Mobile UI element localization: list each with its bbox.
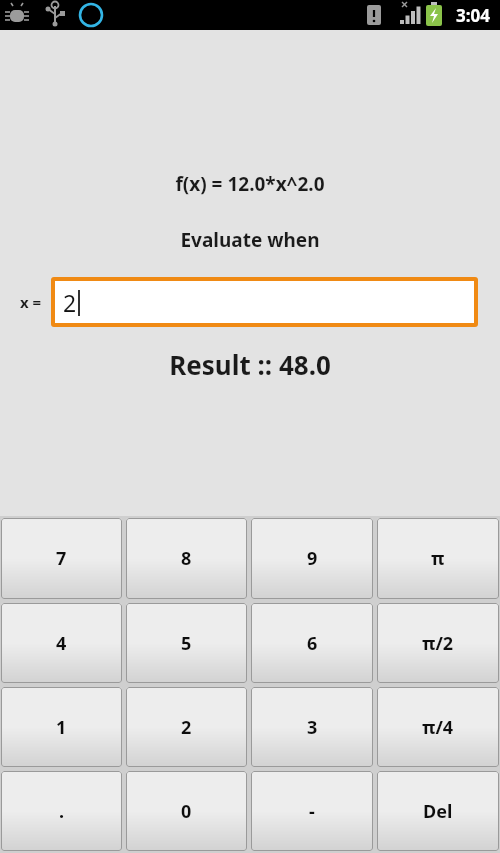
staticText: . <box>59 799 65 824</box>
staticText: Evaluate when <box>180 227 320 253</box>
button[interactable]: - <box>251 771 373 851</box>
button[interactable]: 6 <box>251 603 373 683</box>
staticText: 3:04 <box>456 4 490 27</box>
staticText: 7 <box>56 546 67 571</box>
button[interactable]: Del <box>377 771 499 851</box>
button[interactable]: 4 <box>1 603 122 683</box>
staticText: π/2 <box>422 631 454 656</box>
staticText: 4 <box>56 631 67 656</box>
staticText: 5 <box>181 631 192 656</box>
staticText: 9 <box>307 546 318 571</box>
button[interactable]: π/4 <box>377 687 499 767</box>
button[interactable]: 3 <box>251 687 373 767</box>
button[interactable]: 1 <box>1 687 122 767</box>
staticText: 8 <box>181 546 192 571</box>
staticText: 2 <box>181 715 192 740</box>
button[interactable]: 7 <box>1 518 122 599</box>
button[interactable]: 9 <box>251 518 373 599</box>
staticText: 6 <box>307 631 318 656</box>
staticText: f(x) = 12.0*x^2.0 <box>175 171 325 197</box>
button[interactable]: 5 <box>126 603 247 683</box>
button[interactable]: 2 <box>126 687 247 767</box>
staticText: 3 <box>307 715 318 740</box>
staticText: 0 <box>181 799 192 824</box>
staticText: π <box>431 546 445 571</box>
button[interactable]: . <box>1 771 122 851</box>
staticText: Result :: 48.0 <box>169 347 331 382</box>
button[interactable]: π/2 <box>377 603 499 683</box>
button[interactable]: 0 <box>126 771 247 851</box>
button[interactable]: 8 <box>126 518 247 599</box>
staticText: 2 <box>63 287 77 318</box>
button[interactable]: 2 <box>55 281 474 323</box>
staticText: - <box>309 799 315 824</box>
staticText: π/4 <box>422 715 454 740</box>
button[interactable]: π <box>377 518 499 599</box>
staticText: x = <box>20 292 42 312</box>
staticText: 1 <box>56 715 67 740</box>
staticText: Del <box>423 799 453 824</box>
